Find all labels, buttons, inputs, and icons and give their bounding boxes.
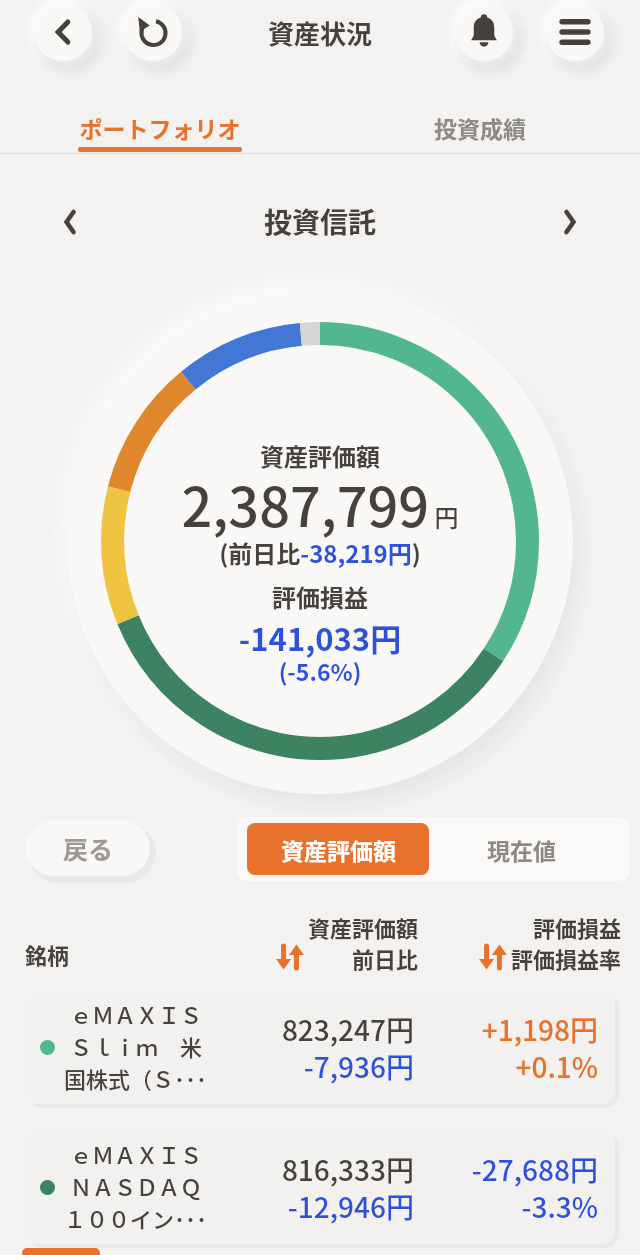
staticText: -27,688円 bbox=[438, 1149, 598, 1190]
staticText: 戻る bbox=[63, 830, 114, 866]
staticText: +1,198円 bbox=[438, 1009, 598, 1050]
staticText: 評価損益 bbox=[471, 911, 621, 943]
button[interactable]: 資産評価額 bbox=[247, 823, 429, 875]
staticText: -141,033円 bbox=[0, 615, 640, 660]
button[interactable] bbox=[48, 200, 92, 244]
staticText: (前日比-38,219円) bbox=[0, 535, 640, 570]
button[interactable] bbox=[455, 3, 513, 61]
button[interactable] bbox=[34, 3, 92, 61]
staticText: 投資成績 bbox=[320, 111, 640, 144]
staticText: ｅＭＡＸＩＳ bbox=[70, 1138, 203, 1170]
staticText: 資産状況 bbox=[0, 14, 640, 52]
staticText: -7,936円 bbox=[254, 1046, 414, 1087]
button[interactable] bbox=[546, 3, 604, 61]
staticText: ポートフォリオ bbox=[0, 111, 320, 144]
staticText: 資産評価額 bbox=[268, 911, 418, 943]
staticText: 823,247円 bbox=[254, 1009, 414, 1050]
button[interactable]: ｅＭＡＸＩＳ bbox=[24, 1130, 615, 1244]
staticText: 投資信託 bbox=[0, 201, 640, 242]
button[interactable]: 現在値 bbox=[429, 823, 614, 875]
staticText: Ｓｌｉｍ 米 bbox=[70, 1030, 203, 1062]
staticText: 資産評価額 bbox=[281, 833, 396, 866]
button[interactable]: ポートフォリオ bbox=[0, 100, 320, 153]
staticText: 現在値 bbox=[487, 833, 556, 866]
staticText: 国株式（Ｓ･･･ bbox=[64, 1062, 208, 1094]
staticText: 評価損益 bbox=[0, 579, 640, 614]
button[interactable]: ｅＭＡＸＩＳ bbox=[24, 990, 615, 1104]
button[interactable] bbox=[548, 200, 592, 244]
button[interactable] bbox=[124, 3, 182, 61]
staticText: 816,333円 bbox=[254, 1149, 414, 1190]
staticText: 資産評価額 bbox=[0, 438, 640, 473]
staticText: (-5.6%) bbox=[0, 654, 640, 687]
staticText: ｅＭＡＸＩＳ bbox=[70, 998, 203, 1030]
staticText: 2,387,799 円 bbox=[0, 464, 640, 542]
staticText: １００イン･･･ bbox=[64, 1202, 208, 1234]
staticText: -12,946円 bbox=[254, 1186, 414, 1227]
button[interactable]: 戻る bbox=[26, 820, 150, 876]
button[interactable]: 投資成績 bbox=[320, 100, 640, 153]
staticText: -3.3% bbox=[438, 1186, 598, 1227]
staticText: 前日比 bbox=[268, 942, 418, 974]
staticText: +0.1% bbox=[438, 1046, 598, 1087]
staticText: ＮＡＳＤＡＱ bbox=[70, 1170, 203, 1202]
staticText: 銘柄 bbox=[25, 938, 70, 970]
staticText: 評価損益率 bbox=[471, 942, 621, 974]
